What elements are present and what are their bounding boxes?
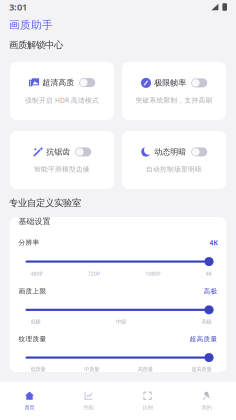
staticText: 基础设置 xyxy=(18,216,50,226)
staticText: 高极 xyxy=(201,318,211,325)
staticText: 动态明暗 xyxy=(154,147,186,157)
staticText: 中级 xyxy=(116,318,126,325)
staticText: 极限帧率 xyxy=(154,78,186,88)
staticText: 比例 xyxy=(142,404,152,411)
staticText: 1080P xyxy=(145,270,160,277)
staticText: 分辨率 xyxy=(18,238,39,247)
button[interactable]: 我的 xyxy=(177,382,236,420)
staticText: 4K xyxy=(205,270,211,277)
staticText: 强制开启 HDR 高清模式 xyxy=(25,96,99,105)
staticText: 中质量 xyxy=(84,366,99,373)
button[interactable]: 超清高质 xyxy=(10,62,114,120)
staticText: 3:01 xyxy=(9,1,27,13)
staticText: 高质量 xyxy=(138,366,153,373)
staticText: 首页 xyxy=(24,404,34,411)
staticText: 720P xyxy=(88,270,100,277)
button[interactable]: 动态明暗 xyxy=(122,131,226,189)
staticText: 纹理质量 xyxy=(18,335,46,343)
button[interactable]: 首页 xyxy=(0,382,59,420)
staticText: 超高质量 xyxy=(189,335,217,343)
staticText: 4K xyxy=(209,238,217,247)
staticText: 我的 xyxy=(201,404,211,411)
staticText: 低质量 xyxy=(30,366,45,373)
staticText: 超高质量 xyxy=(191,366,211,373)
staticText: 低极 xyxy=(30,318,40,325)
button[interactable]: 比例 xyxy=(118,382,177,420)
button[interactable]: 抗锯齿 xyxy=(10,131,114,189)
staticText: 画质解锁中心 xyxy=(9,39,63,51)
staticText: 抗锯齿 xyxy=(46,147,70,157)
staticText: 自动控制场景明暗 xyxy=(146,165,202,173)
staticText: 高极 xyxy=(203,287,217,295)
button[interactable]: 极限帧率 xyxy=(122,62,226,120)
staticText: 超清高质 xyxy=(42,78,74,87)
staticText: 画质上限 xyxy=(18,287,46,295)
staticText: 画质助手 xyxy=(9,18,53,31)
staticText: 突破系统限制，支持高刷 xyxy=(135,96,212,104)
staticText: 性能 xyxy=(83,404,93,411)
staticText: 480P xyxy=(30,270,42,277)
staticText: 智能平滑模型边缘 xyxy=(34,165,90,173)
staticText: 专业自定义实验室 xyxy=(9,197,81,209)
button[interactable]: 性能 xyxy=(59,382,118,420)
